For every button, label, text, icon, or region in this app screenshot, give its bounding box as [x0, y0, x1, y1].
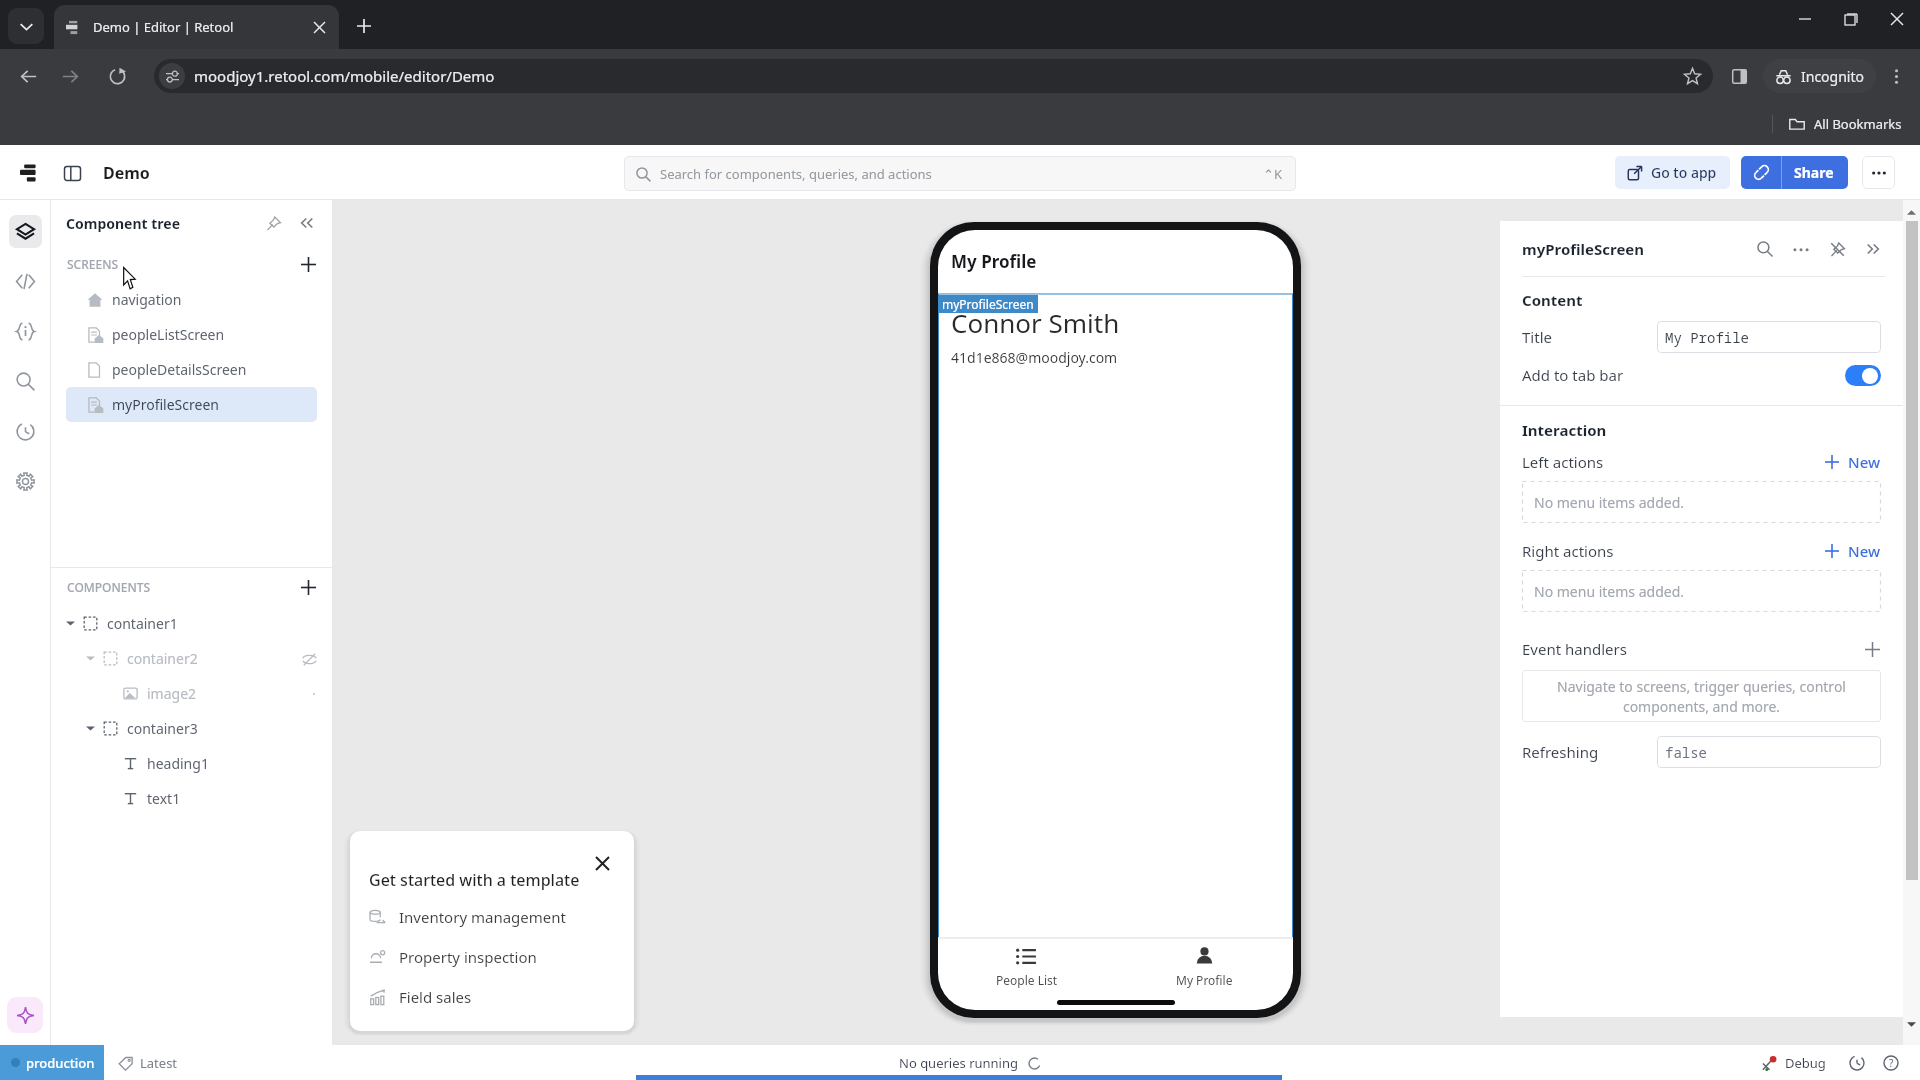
- button[interactable]: container1: [50, 606, 333, 641]
- button[interactable]: Search for components, queries, and acti…: [624, 156, 1296, 191]
- staticText: Add to tab bar: [1522, 365, 1624, 385]
- button[interactable]: Retool home: [14, 158, 44, 188]
- button[interactable]: Latest: [114, 1054, 182, 1072]
- button[interactable]: New: [1823, 541, 1883, 561]
- button[interactable]: All Bookmarks: [1789, 115, 1902, 133]
- button[interactable]: Back: [12, 60, 44, 92]
- staticText: container3: [127, 719, 198, 738]
- button[interactable]: Settings: [9, 465, 42, 498]
- button[interactable]: Close tab: [307, 15, 331, 39]
- button[interactable]: heading1: [50, 746, 333, 781]
- button[interactable]: peopleListScreen: [66, 317, 317, 352]
- staticText: New: [1848, 541, 1881, 561]
- staticText: 41d1e868@moodjoy.com: [951, 348, 1118, 367]
- staticText: My Profile: [1665, 328, 1749, 347]
- staticText: ⌃K: [1263, 165, 1282, 183]
- staticText: COMPONENTS: [67, 579, 151, 595]
- staticText: Share: [1794, 163, 1834, 182]
- staticText: moodjoy1.retool.com/mobile/editor/Demo: [194, 66, 495, 86]
- staticText: heading1: [147, 754, 209, 773]
- staticText: Search for components, queries, and acti…: [660, 165, 932, 183]
- button[interactable]: My Profile: [1657, 321, 1881, 353]
- button[interactable]: container3: [50, 711, 333, 746]
- button[interactable]: Property inspection: [369, 937, 634, 977]
- button[interactable]: Forward: [54, 60, 86, 92]
- staticText: Connor Smith: [951, 305, 1120, 340]
- button[interactable]: Search: [9, 365, 42, 398]
- button[interactable]: moodjoy1.retool.com/mobile/editor/Demo: [154, 59, 1713, 93]
- staticText: Refreshing: [1522, 742, 1599, 762]
- button[interactable]: Collapse panel: [1861, 237, 1885, 261]
- staticText: container1: [107, 614, 178, 633]
- button[interactable]: navigation: [66, 282, 317, 317]
- button[interactable]: Side panel: [1723, 60, 1755, 92]
- button[interactable]: image2: [50, 676, 333, 711]
- staticText: Go to app: [1651, 163, 1717, 182]
- button[interactable]: History: [1846, 1052, 1868, 1074]
- button[interactable]: Hidden: [299, 649, 319, 669]
- button[interactable]: Go to app: [1615, 156, 1730, 189]
- staticText: production: [26, 1054, 95, 1072]
- button[interactable]: Close: [590, 851, 614, 875]
- button[interactable]: Help: [1880, 1052, 1902, 1074]
- staticText: SCREENS: [67, 256, 119, 272]
- button[interactable]: Demo | Editor | Retool: [54, 5, 339, 49]
- button[interactable]: Search: [1753, 237, 1777, 261]
- button[interactable]: Add component: [297, 576, 319, 598]
- button[interactable]: text1: [50, 781, 333, 816]
- staticText: Event handlers: [1522, 639, 1627, 659]
- button[interactable]: Add to tab bar toggle: [1845, 365, 1881, 386]
- staticText: Demo | Editor | Retool: [93, 18, 234, 36]
- button[interactable]: History: [9, 415, 42, 448]
- staticText: No menu items added.: [1534, 582, 1685, 601]
- button[interactable]: Bookmark this page: [1679, 63, 1705, 89]
- staticText: Left actions: [1522, 452, 1604, 472]
- button[interactable]: Collapse panel: [295, 211, 319, 235]
- staticText: container2: [127, 649, 198, 668]
- button[interactable]: container2: [50, 641, 333, 676]
- button[interactable]: Reload: [101, 60, 133, 92]
- button[interactable]: Toggle left panel: [57, 158, 87, 188]
- staticText: Right actions: [1522, 541, 1614, 561]
- button[interactable]: Add screen: [297, 253, 319, 275]
- button[interactable]: Navigate to screens, trigger queries, co…: [1522, 670, 1881, 722]
- button[interactable]: No menu items added.: [1522, 481, 1881, 523]
- button[interactable]: No menu items added.: [1522, 570, 1881, 612]
- button[interactable]: Search tabs: [8, 8, 44, 44]
- button[interactable]: Field sales: [369, 977, 634, 1017]
- staticText: No menu items added.: [1534, 493, 1685, 512]
- button[interactable]: Code: [9, 265, 42, 298]
- button[interactable]: false: [1657, 736, 1881, 768]
- staticText: myProfileScreen: [1522, 239, 1645, 259]
- staticText: false: [1665, 743, 1707, 762]
- staticText: peopleDetailsScreen: [112, 360, 247, 379]
- button[interactable]: Component tree: [9, 215, 42, 248]
- button[interactable]: production: [0, 1045, 104, 1080]
- button[interactable]: New tab: [348, 10, 380, 42]
- staticText: No queries running: [899, 1054, 1019, 1072]
- button[interactable]: Add event handler: [1861, 638, 1883, 660]
- button[interactable]: peopleDetailsScreen: [66, 352, 317, 387]
- staticText: Demo: [103, 162, 150, 184]
- button[interactable]: Maximize: [1828, 0, 1874, 38]
- button[interactable]: Debug: [1758, 1054, 1830, 1072]
- button[interactable]: People List: [938, 939, 1115, 989]
- button[interactable]: Close window: [1874, 0, 1920, 38]
- button[interactable]: More options: [1862, 156, 1895, 189]
- button[interactable]: Unpin: [1825, 237, 1849, 261]
- button[interactable]: Minimize: [1782, 0, 1828, 38]
- button[interactable]: myProfileScreen: [66, 387, 317, 422]
- staticText: Incognito: [1801, 67, 1864, 86]
- button[interactable]: Share: [1741, 156, 1848, 189]
- button[interactable]: Pin panel: [261, 211, 285, 235]
- button[interactable]: AI assistant: [7, 997, 43, 1033]
- button[interactable]: Chrome menu: [1880, 60, 1912, 92]
- button[interactable]: More: [1789, 237, 1813, 261]
- button[interactable]: Incognito: [1763, 59, 1876, 93]
- button[interactable]: My Profile: [1115, 939, 1293, 989]
- staticText: My Profile: [951, 250, 1037, 273]
- button[interactable]: State: [9, 315, 42, 348]
- staticText: My Profile: [1176, 972, 1233, 988]
- button[interactable]: New: [1823, 452, 1883, 472]
- button[interactable]: Inventory management: [369, 897, 634, 937]
